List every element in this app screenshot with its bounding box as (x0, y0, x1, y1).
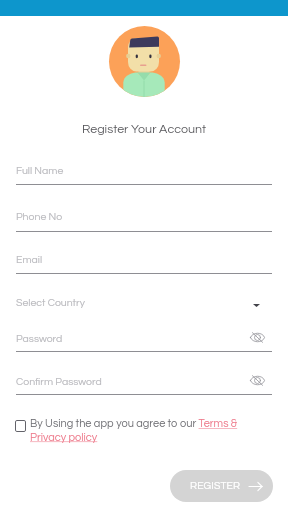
button[interactable]: REGISTER (170, 470, 273, 502)
staticText: REGISTER (190, 480, 241, 491)
staticText: Password (16, 333, 63, 344)
button[interactable]: Select Country (0, 290, 288, 314)
staticText: Select Country (16, 297, 85, 308)
staticText: By Using the app you agree to our Terms … (30, 418, 238, 443)
staticText: Confirm Password (16, 376, 102, 387)
button[interactable]: Toggle password visibility (245, 326, 269, 348)
staticText: Email (16, 254, 43, 265)
button[interactable]: By Using the app you agree to our Terms … (30, 418, 275, 443)
button[interactable]: Agree to terms checkbox (13, 417, 28, 434)
button[interactable]: Toggle password visibility (245, 369, 269, 391)
staticText: Phone No (16, 211, 63, 222)
staticText: Full Name (16, 165, 64, 176)
staticText: Register Your Account (82, 123, 207, 136)
